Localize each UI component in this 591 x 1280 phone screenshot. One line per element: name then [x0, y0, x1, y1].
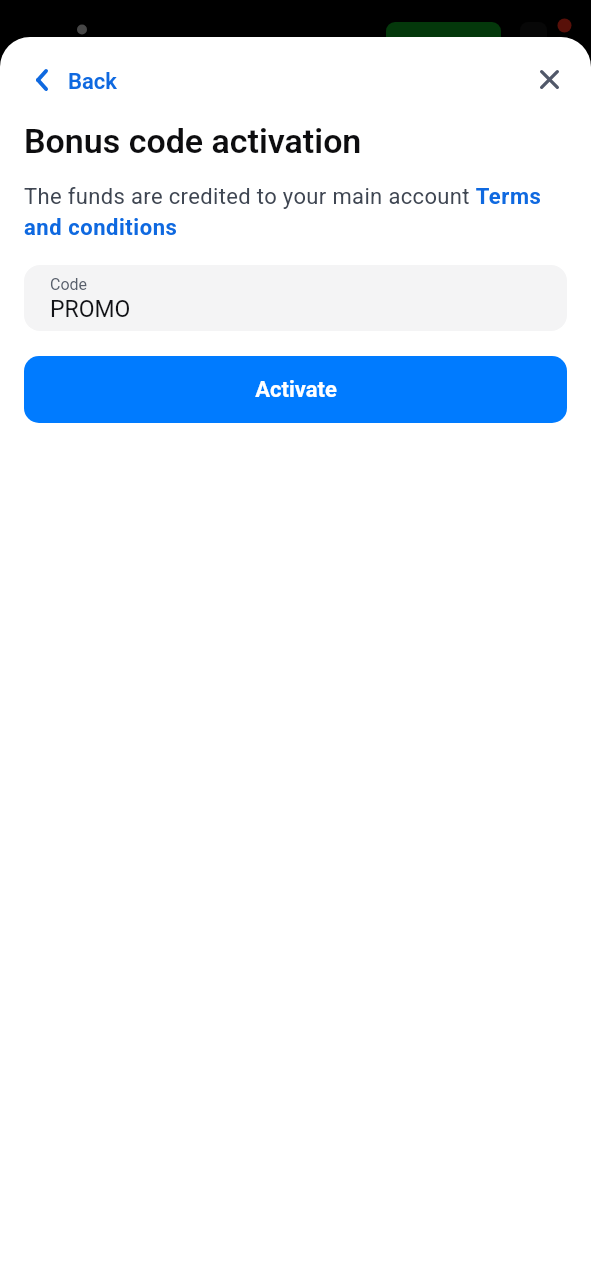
staticText: PROMO — [50, 296, 131, 323]
staticText: Bonus code activation — [24, 121, 362, 161]
staticText: Back — [68, 69, 117, 95]
button[interactable]: Back — [28, 59, 131, 105]
staticText: Activate — [255, 377, 337, 403]
button[interactable]: Code — [24, 265, 567, 331]
staticText: The funds are credited to your main acco… — [24, 184, 544, 241]
button[interactable]: Activate — [24, 356, 567, 423]
button[interactable]: Close — [531, 61, 567, 97]
staticText: Code — [50, 275, 88, 294]
